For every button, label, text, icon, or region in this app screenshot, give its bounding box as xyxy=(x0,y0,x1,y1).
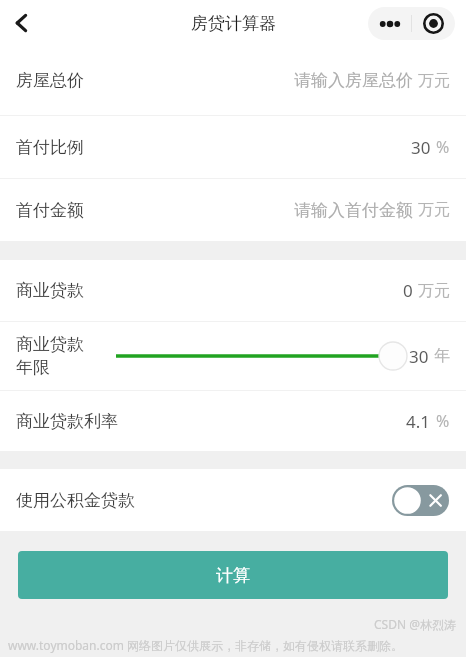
button[interactable]: Target xyxy=(412,7,455,40)
staticText: 4.1 xyxy=(406,410,431,433)
staticText: www.toymoban.com 网络图片仅供展示，非存储，如有侵权请联系删除。 xyxy=(8,637,404,653)
button[interactable]: 商业贷款年限 xyxy=(0,322,466,390)
button[interactable]: 房屋总价 xyxy=(0,46,466,115)
staticText: 请输入首付金额 xyxy=(294,200,413,221)
staticText: 0 xyxy=(403,279,413,302)
button[interactable]: 首付比例 xyxy=(0,116,466,178)
staticText: 首付金额 xyxy=(16,200,84,221)
staticText: 万元 xyxy=(418,281,450,301)
staticText: 计算 xyxy=(216,565,250,586)
staticText: % xyxy=(436,410,450,432)
staticText: 首付比例 xyxy=(16,137,84,158)
staticText: 请输入房屋总价 xyxy=(294,70,413,91)
staticText: % xyxy=(436,136,450,158)
button[interactable]: More xyxy=(368,7,411,40)
staticText: 房屋总价 xyxy=(16,70,84,91)
staticText: 年 xyxy=(434,346,450,366)
staticText: 使用公积金贷款 xyxy=(16,490,135,511)
button[interactable]: 首付金额 xyxy=(0,179,466,241)
button[interactable]: 商业贷款利率 xyxy=(0,391,466,451)
staticText: 30 xyxy=(409,345,429,368)
staticText: 万元 xyxy=(418,200,450,220)
button[interactable]: Use provident fund loan toggle xyxy=(392,485,449,516)
staticText: 商业贷款年限 xyxy=(16,334,98,378)
staticText: CSDN @林烈涛 xyxy=(374,616,456,632)
staticText: 30 xyxy=(411,136,431,159)
button[interactable]: 商业贷款 xyxy=(0,260,466,321)
button[interactable]: Back xyxy=(0,0,44,46)
staticText: 商业贷款 xyxy=(16,280,84,301)
staticText: 商业贷款利率 xyxy=(16,411,118,432)
button[interactable]: 使用公积金贷款 xyxy=(0,469,466,531)
button[interactable]: 计算 xyxy=(18,551,448,599)
staticText: 房贷计算器 xyxy=(191,13,276,34)
staticText: 万元 xyxy=(418,71,450,91)
